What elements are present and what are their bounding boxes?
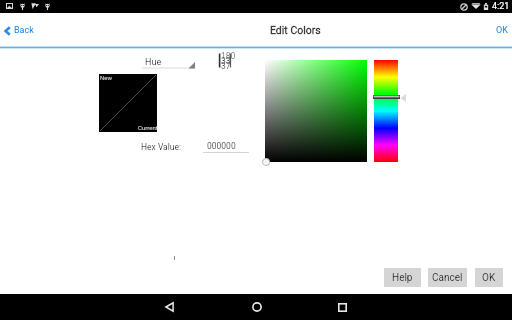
button[interactable] (374, 60, 398, 162)
staticText: Hue (145, 57, 162, 68)
button[interactable]: Cancel (428, 268, 467, 287)
staticText: 180 (221, 51, 236, 61)
staticText: Current (138, 124, 158, 131)
button[interactable]: Home (235, 296, 278, 318)
staticText: 33 (221, 56, 231, 66)
staticText: Cancel (432, 272, 463, 284)
button[interactable]: Hue (142, 55, 195, 69)
button[interactable]: OK (475, 268, 503, 287)
staticText: 000000 (207, 141, 236, 151)
button[interactable]: Recent apps (321, 296, 364, 318)
staticText: 4:21 (492, 1, 510, 12)
button[interactable]: 180 (217, 51, 233, 70)
staticText: 37 (221, 61, 231, 71)
staticText: Hex Value: (141, 142, 182, 152)
button[interactable]: Help (384, 268, 421, 287)
staticText: OK (482, 272, 496, 284)
button[interactable]: OK (488, 25, 512, 36)
button[interactable]: Back (0, 25, 44, 36)
staticText: OK (496, 25, 508, 36)
button[interactable]: 000000 (203, 140, 249, 153)
staticText: Help (392, 272, 413, 284)
button[interactable]: Back (148, 296, 191, 318)
button[interactable] (265, 60, 367, 162)
staticText: Edit Colors (270, 24, 321, 36)
staticText: New (100, 74, 112, 81)
staticText: Back (14, 25, 34, 36)
